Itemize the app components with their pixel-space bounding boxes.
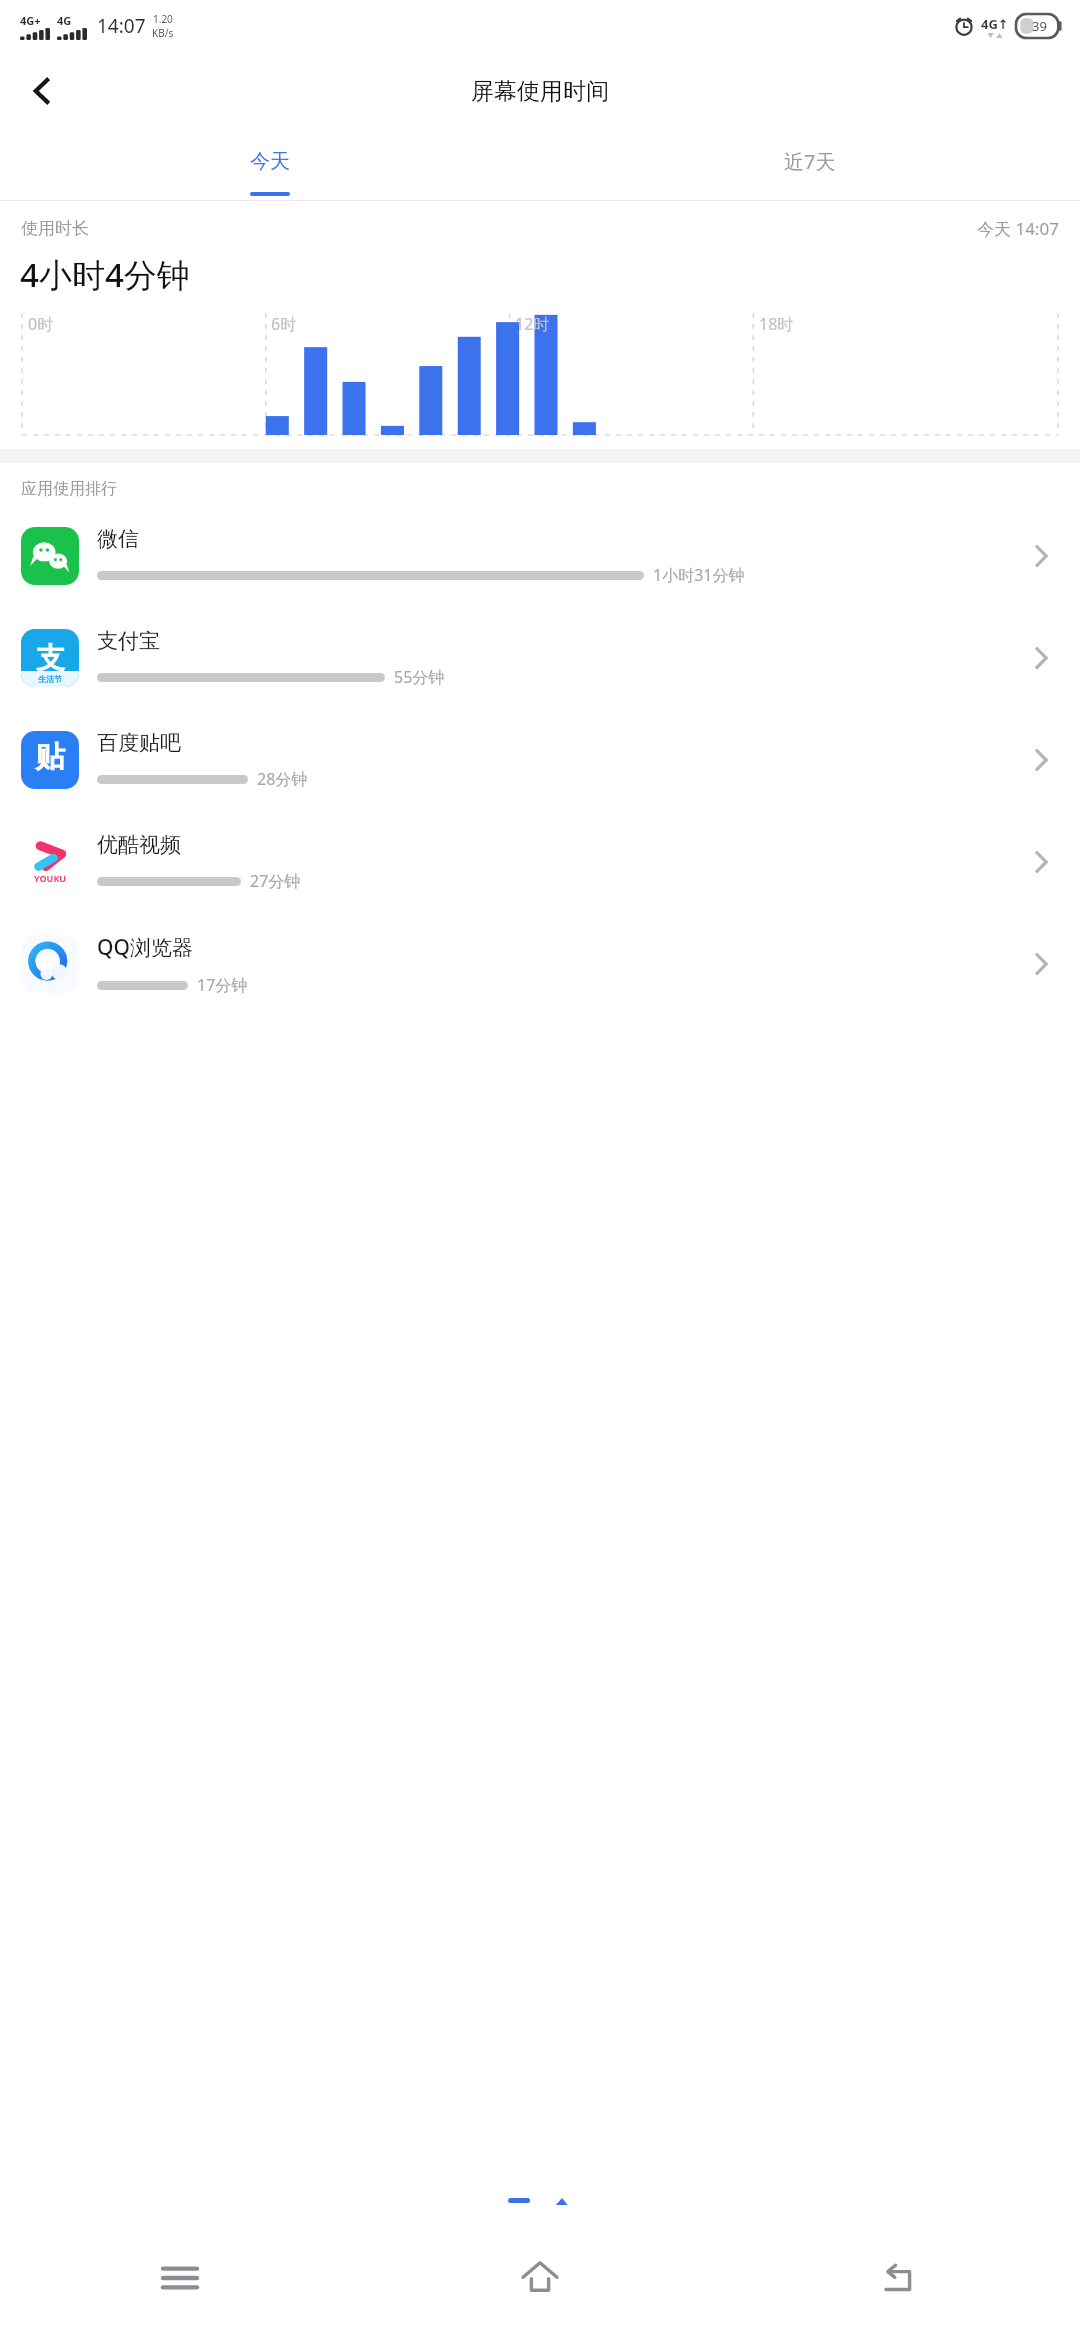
staticText: 近7天	[784, 148, 836, 175]
staticText: 支付宝	[97, 628, 160, 654]
staticText: KB/s	[152, 26, 174, 40]
staticText: 优酷视频	[97, 832, 181, 858]
button[interactable]: Back	[720, 2216, 1080, 2340]
staticText: 微信	[97, 526, 139, 552]
staticText: 应用使用排行	[21, 479, 117, 499]
staticText: 4小时4分钟	[20, 252, 190, 297]
staticText: 使用时长	[21, 218, 89, 239]
button[interactable]: 今天	[0, 130, 540, 192]
staticText: 4G↑	[981, 15, 1009, 33]
button[interactable]: QQ浏览器	[0, 913, 1080, 1015]
staticText: 14:07	[97, 13, 146, 39]
staticText: 生活节	[38, 674, 62, 684]
button[interactable]: Home	[360, 2216, 720, 2340]
staticText: 1.20	[153, 12, 173, 26]
staticText: 今天 14:07	[977, 217, 1059, 240]
staticText: 0时	[28, 313, 54, 335]
staticText: 4G+	[20, 13, 41, 28]
staticText: 27分钟	[250, 870, 301, 892]
staticText: 屏幕使用时间	[471, 77, 609, 106]
staticText: 12时	[515, 313, 550, 335]
staticText: YOUKU	[34, 872, 67, 884]
staticText: 28分钟	[257, 768, 308, 790]
staticText: 百度贴吧	[97, 730, 181, 756]
button[interactable]: 贴	[0, 709, 1080, 811]
button[interactable]: Back	[14, 63, 70, 119]
staticText: 18时	[759, 313, 794, 335]
button[interactable]: 支	[0, 607, 1080, 709]
staticText: 55分钟	[394, 666, 445, 688]
button[interactable]: 微信	[0, 505, 1080, 607]
staticText: 1小时31分钟	[653, 564, 745, 586]
button[interactable]: YOUKU	[0, 811, 1080, 913]
button[interactable]: 近7天	[540, 130, 1080, 192]
button[interactable]: Recents	[0, 2216, 360, 2340]
staticText: QQ浏览器	[97, 933, 193, 962]
staticText: 4G	[57, 13, 72, 28]
staticText: 今天	[250, 149, 290, 174]
staticText: 39	[1032, 17, 1047, 35]
staticText: 6时	[271, 313, 297, 335]
staticText: 支	[36, 640, 65, 677]
staticText: 贴	[35, 738, 65, 776]
staticText: 17分钟	[197, 974, 248, 996]
